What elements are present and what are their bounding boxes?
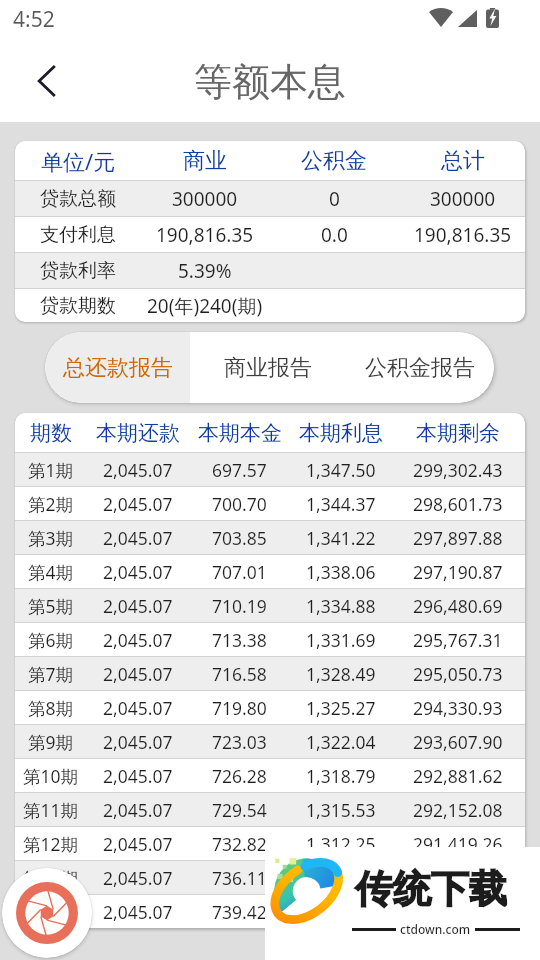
staticText: 总还款报告 (63, 354, 173, 382)
staticText: 739.42 (212, 900, 267, 924)
button[interactable]: 第7期 (15, 657, 525, 690)
staticText: 732.82 (212, 832, 267, 856)
staticText: 公积金报告 (365, 354, 475, 382)
button[interactable]: 第1期 (15, 453, 525, 486)
staticText: 本期还款 (96, 420, 180, 446)
button[interactable]: 第9期 (15, 725, 525, 758)
staticText: 第9期 (28, 730, 74, 754)
staticText: 190,816.35 (414, 222, 512, 248)
staticText: 726.28 (212, 764, 267, 788)
button[interactable]: 第5期 (15, 589, 525, 622)
staticText: 190,816.35 (156, 222, 254, 248)
button[interactable]: 第4期 (15, 555, 525, 588)
staticText: 1,315.53 (306, 798, 376, 822)
staticText: 2,045.07 (103, 594, 173, 618)
staticText: 1,341.22 (306, 526, 376, 550)
staticText: 第5期 (28, 594, 74, 618)
staticText: 单位/元 (41, 146, 116, 176)
staticText: 1,334.88 (306, 594, 376, 618)
button[interactable]: 第13期 (15, 861, 525, 894)
staticText: 第6期 (28, 628, 74, 652)
staticText: 1,331.69 (306, 628, 376, 652)
staticText: 1,305.65 (306, 900, 376, 924)
staticText: 贷款总额 (40, 187, 116, 211)
staticText: 本期剩余 (416, 420, 500, 446)
button[interactable]: 第3期 (15, 521, 525, 554)
staticText: 2,045.07 (103, 798, 173, 822)
staticText: 297,897.88 (413, 526, 503, 550)
staticText: 商业报告 (224, 354, 312, 382)
button[interactable]: 商业报告 (190, 332, 346, 403)
staticText: 300000 (430, 186, 496, 212)
staticText: 300000 (172, 186, 238, 212)
staticText: 商业 (183, 147, 227, 175)
staticText: 2,045.07 (103, 458, 173, 482)
staticText: 716.58 (212, 662, 267, 686)
staticText: 291,419.26 (413, 832, 503, 856)
staticText: 总计 (441, 147, 485, 175)
staticText: 299,302.43 (413, 458, 503, 482)
staticText: 292,881.62 (413, 764, 503, 788)
staticText: 1,308.96 (306, 866, 376, 890)
staticText: 第1期 (28, 458, 74, 482)
button[interactable]: 总还款报告 (45, 332, 190, 403)
button[interactable]: 第6期 (15, 623, 525, 656)
staticText: 第13期 (23, 866, 79, 890)
staticText: 2,045.07 (103, 560, 173, 584)
button[interactable]: 公积金报告 (346, 332, 494, 403)
staticText: 第7期 (28, 662, 74, 686)
staticText: 298,601.73 (413, 492, 503, 516)
staticText: 等额本息 (194, 58, 346, 106)
button[interactable]: 第8期 (15, 691, 525, 724)
staticText: 295,767.31 (413, 628, 503, 652)
staticText: 2,045.07 (103, 730, 173, 754)
staticText: ctdown.com (400, 921, 471, 937)
staticText: 713.38 (212, 628, 267, 652)
staticText: 2,045.07 (103, 662, 173, 686)
staticText: 293,607.90 (413, 730, 503, 754)
staticText: 723.03 (212, 730, 267, 754)
staticText: 0 (329, 186, 340, 212)
staticText: 贷款期数 (40, 294, 116, 318)
staticText: 2,045.07 (103, 492, 173, 516)
button[interactable]: 第2期 (15, 487, 525, 520)
staticText: 719.80 (212, 696, 267, 720)
staticText: 1,325.27 (306, 696, 376, 720)
staticText: 第10期 (23, 764, 79, 788)
staticText: 第2期 (28, 492, 74, 516)
staticText: 期数 (30, 420, 72, 446)
staticText: 第12期 (23, 832, 79, 856)
staticText: 290,683.15 (413, 866, 503, 890)
staticText: 2,045.07 (103, 628, 173, 652)
staticText: 第3期 (28, 526, 74, 550)
button[interactable]: 第14期 (15, 895, 525, 928)
staticText: 1,322.04 (306, 730, 376, 754)
button[interactable]: 第11期 (15, 793, 525, 826)
staticText: 707.01 (212, 560, 267, 584)
staticText: 700.70 (212, 492, 267, 516)
staticText: 1,344.37 (306, 492, 376, 516)
staticText: 1,338.06 (306, 560, 376, 584)
staticText: 第11期 (23, 798, 79, 822)
staticText: 710.19 (212, 594, 267, 618)
staticText: 第14期 (23, 900, 79, 924)
button[interactable]: Record (2, 868, 92, 958)
staticText: 2,045.07 (103, 526, 173, 550)
staticText: 本期利息 (299, 420, 383, 446)
staticText: 5.39% (178, 258, 232, 284)
staticText: 703.85 (212, 526, 267, 550)
staticText: 20(年)240(期) (147, 293, 263, 319)
staticText: 第4期 (28, 560, 74, 584)
staticText: 697.57 (212, 458, 267, 482)
staticText: 贷款利率 (40, 259, 116, 283)
staticText: 729.54 (212, 798, 267, 822)
button[interactable]: Back (17, 50, 79, 112)
staticText: 0.0 (321, 222, 348, 248)
staticText: 2,045.07 (103, 696, 173, 720)
button[interactable]: 第12期 (15, 827, 525, 860)
staticText: 2,045.07 (103, 900, 173, 924)
button[interactable]: 第10期 (15, 759, 525, 792)
staticText: 296,480.69 (413, 594, 503, 618)
staticText: 295,050.73 (413, 662, 503, 686)
staticText: 2,045.07 (103, 764, 173, 788)
